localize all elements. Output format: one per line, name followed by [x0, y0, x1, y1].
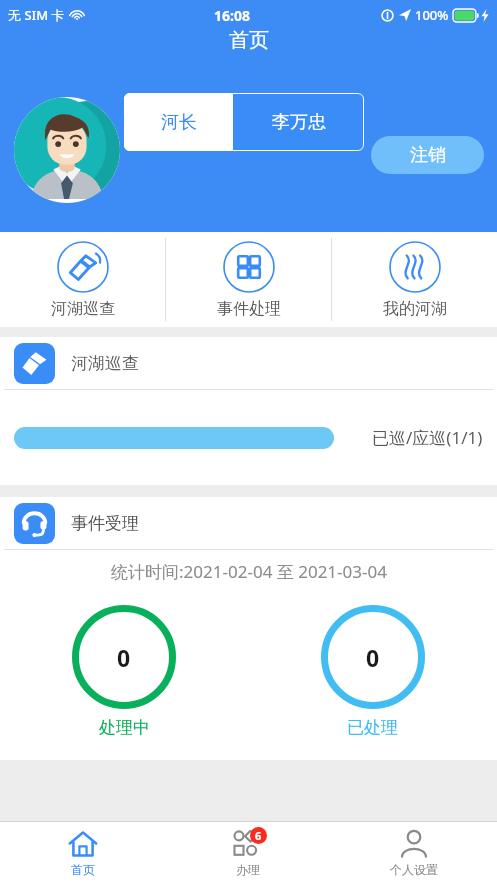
button[interactable]: 河湖巡查 [0, 232, 165, 327]
button[interactable]: 事件处理 [166, 232, 331, 327]
button[interactable]: 事件受理 [14, 497, 497, 549]
button[interactable]: 李万忠 [233, 93, 364, 151]
staticText: 6 [255, 828, 262, 843]
button[interactable]: 河湖巡查 [14, 337, 497, 389]
staticText: 首页 [71, 862, 95, 877]
staticText: 李万忠 [272, 111, 326, 134]
staticText: 已巡/应巡(1/1) [372, 426, 483, 449]
staticText: 16:08 [214, 6, 250, 25]
staticText: 个人设置 [390, 862, 438, 877]
staticText: 100% [415, 6, 449, 24]
button[interactable]: 办理 [165, 822, 331, 883]
staticText: 0 [117, 642, 131, 673]
button[interactable]: 0 [0, 605, 248, 738]
staticText: 河湖巡查 [51, 299, 115, 319]
staticText: 已处理 [347, 717, 398, 738]
staticText: 河湖巡查 [71, 353, 139, 374]
staticText: 办理 [236, 862, 260, 877]
staticText: 0 [366, 642, 380, 673]
staticText: 首页 [229, 28, 269, 53]
button[interactable]: 首页 [0, 822, 165, 883]
other: 个人设置 [399, 829, 429, 859]
button[interactable]: 我的河湖 [332, 232, 497, 327]
staticText: 事件受理 [71, 513, 139, 534]
button[interactable]: 个人设置 [331, 822, 497, 883]
other: 首页 [68, 829, 98, 859]
staticText: 我的河湖 [383, 299, 447, 319]
staticText: 无 SIM 卡 [8, 6, 65, 24]
staticText: 注销 [410, 144, 446, 167]
staticText: 统计时间:2021-02-04 至 2021-03-04 [111, 560, 387, 583]
button[interactable]: 河长 [124, 93, 233, 151]
staticText: 河长 [161, 111, 197, 134]
staticText: 事件处理 [217, 299, 281, 319]
staticText: 处理中 [99, 717, 150, 738]
button[interactable]: 0 [248, 605, 497, 738]
other: 办理 [233, 829, 263, 859]
button[interactable]: 注销 [371, 136, 484, 174]
